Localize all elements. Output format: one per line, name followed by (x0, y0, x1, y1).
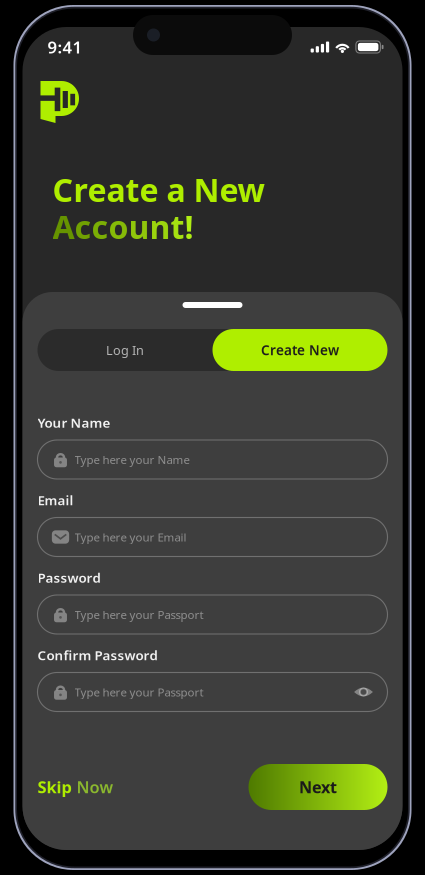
staticText: Type here your Passport (74, 684, 203, 700)
staticText: Skip (37, 776, 71, 798)
staticText: Now (76, 776, 113, 798)
button[interactable]: Type here your Email (37, 517, 387, 556)
button[interactable]: Type here your Name (37, 440, 387, 479)
staticText: 9:41 (47, 36, 82, 58)
staticText: Create New (261, 341, 339, 359)
staticText: Type here your Passport (74, 607, 203, 622)
staticText: Password (37, 568, 100, 587)
staticText: Confirm Password (37, 646, 157, 664)
staticText: Create a New (52, 168, 264, 211)
button[interactable]: Create New (212, 329, 387, 371)
staticText: Email (37, 491, 73, 509)
button[interactable]: Type here your Passport (37, 672, 387, 711)
button[interactable]: Next (248, 764, 387, 810)
staticText: c (74, 205, 91, 248)
staticText: u (128, 205, 149, 248)
button[interactable]: Log In (37, 329, 212, 371)
button[interactable]: Skip (37, 776, 113, 798)
staticText: t (170, 205, 184, 248)
staticText: Next (299, 776, 337, 798)
staticText: Type here your Name (74, 452, 189, 467)
staticText: n (149, 205, 170, 248)
staticText: c (91, 205, 108, 248)
staticText: ! (184, 205, 193, 248)
button[interactable]: Type here your Passport (37, 595, 387, 634)
staticText: A (52, 205, 74, 248)
staticText: o (108, 205, 128, 248)
staticText: Log In (106, 341, 144, 359)
staticText: Type here your Email (74, 529, 186, 545)
staticText: Your Name (37, 413, 110, 432)
